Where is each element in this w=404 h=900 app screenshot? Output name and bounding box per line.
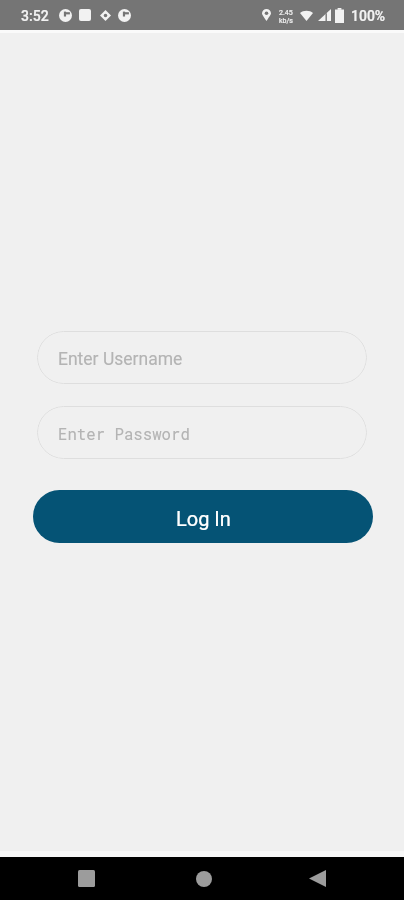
button[interactable]: Log In <box>33 490 373 543</box>
staticText: Log In <box>176 507 231 530</box>
staticText: 3:52 <box>21 8 49 24</box>
button[interactable]: Recents <box>62 857 111 900</box>
button[interactable]: Home <box>179 857 228 900</box>
staticText: 100% <box>351 8 386 24</box>
staticText: Enter Password <box>58 424 190 445</box>
button[interactable]: Enter Password <box>37 406 367 459</box>
staticText: Enter Username <box>58 349 183 370</box>
button[interactable]: Back <box>293 857 342 900</box>
staticText: 2.45 <box>279 9 293 17</box>
staticText: kb/s <box>279 17 293 25</box>
button[interactable]: Enter Username <box>37 331 367 384</box>
